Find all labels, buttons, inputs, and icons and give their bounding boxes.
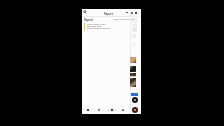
button[interactable]: Photo bbox=[130, 73, 136, 76]
staticText: Report bbox=[84, 18, 94, 22]
button[interactable]: Shop bbox=[117, 105, 129, 114]
staticText: Communication leaving bbox=[87, 27, 110, 30]
button[interactable]: Profile bbox=[129, 105, 141, 114]
button[interactable]: Home bbox=[82, 105, 93, 114]
staticText: Report bbox=[104, 12, 113, 16]
button[interactable]: Photo bbox=[130, 78, 136, 87]
button[interactable]: Create bbox=[105, 105, 117, 114]
button[interactable]: Search bbox=[93, 105, 105, 114]
staticText: Abuse, spam, scam bbox=[87, 23, 106, 26]
button[interactable]: Photo bbox=[130, 66, 136, 72]
button[interactable]: Photo bbox=[130, 57, 136, 63]
staticText: Select Correct Answer bbox=[114, 18, 134, 21]
staticText: Offensive tone bbox=[87, 25, 102, 28]
button[interactable]: Search bbox=[83, 10, 87, 14]
